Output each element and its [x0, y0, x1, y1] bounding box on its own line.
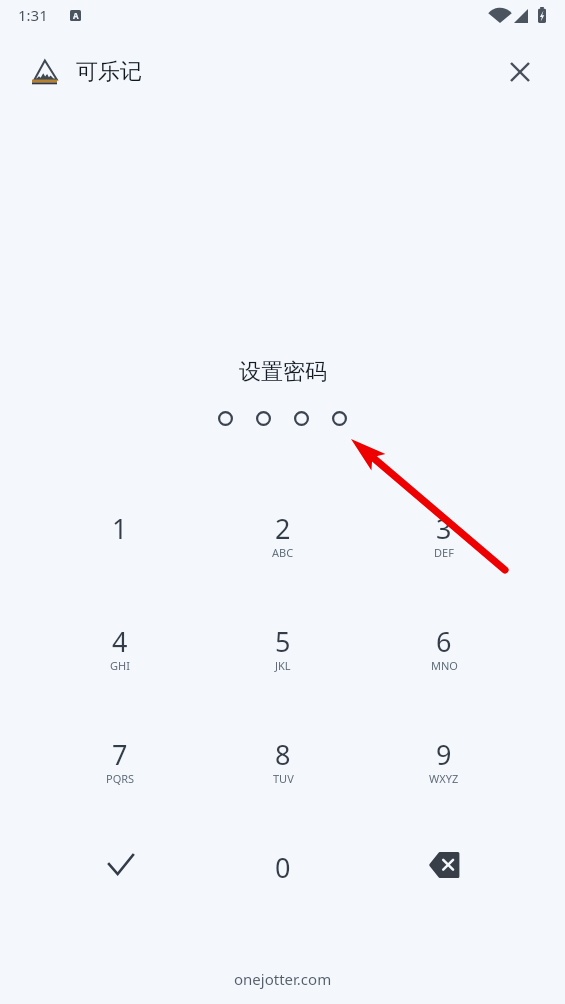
staticText: onejotter.com [234, 969, 332, 989]
staticText: 2 [275, 510, 291, 547]
staticText: 7 [112, 736, 128, 773]
button[interactable]: 0 [205, 811, 361, 923]
staticText: 可乐记 [76, 58, 142, 86]
staticText: 设置密码 [239, 358, 327, 386]
staticText: A [73, 10, 79, 21]
staticText: PQRS [106, 771, 135, 786]
staticText: WXYZ [429, 771, 459, 786]
button[interactable]: 8 [205, 698, 361, 810]
button[interactable]: 6 [366, 585, 522, 697]
button[interactable]: Confirm [42, 811, 198, 923]
staticText: 5 [275, 623, 291, 660]
staticText: 6 [436, 623, 452, 660]
staticText: TUV [273, 771, 294, 786]
staticText: MNO [431, 658, 458, 673]
staticText: JKL [275, 658, 291, 673]
staticText: 9 [436, 736, 452, 773]
button[interactable]: Close [505, 57, 535, 87]
button[interactable]: 5 [205, 585, 361, 697]
staticText: 1 [112, 510, 128, 547]
button[interactable]: 4 [42, 585, 198, 697]
button[interactable]: 1 [42, 472, 198, 584]
button[interactable]: 9 [366, 698, 522, 810]
button[interactable]: 2 [205, 472, 361, 584]
button[interactable]: Backspace [366, 811, 522, 923]
button[interactable]: 7 [42, 698, 198, 810]
staticText: DEF [434, 545, 454, 560]
staticText: 8 [275, 736, 291, 773]
staticText: 0 [275, 849, 291, 886]
staticText: 1:31 [18, 5, 48, 25]
staticText: 4 [112, 623, 128, 660]
staticText: ABC [272, 545, 294, 560]
button[interactable]: 3 [366, 472, 522, 584]
staticText: GHI [110, 658, 130, 673]
staticText: 3 [436, 510, 452, 547]
